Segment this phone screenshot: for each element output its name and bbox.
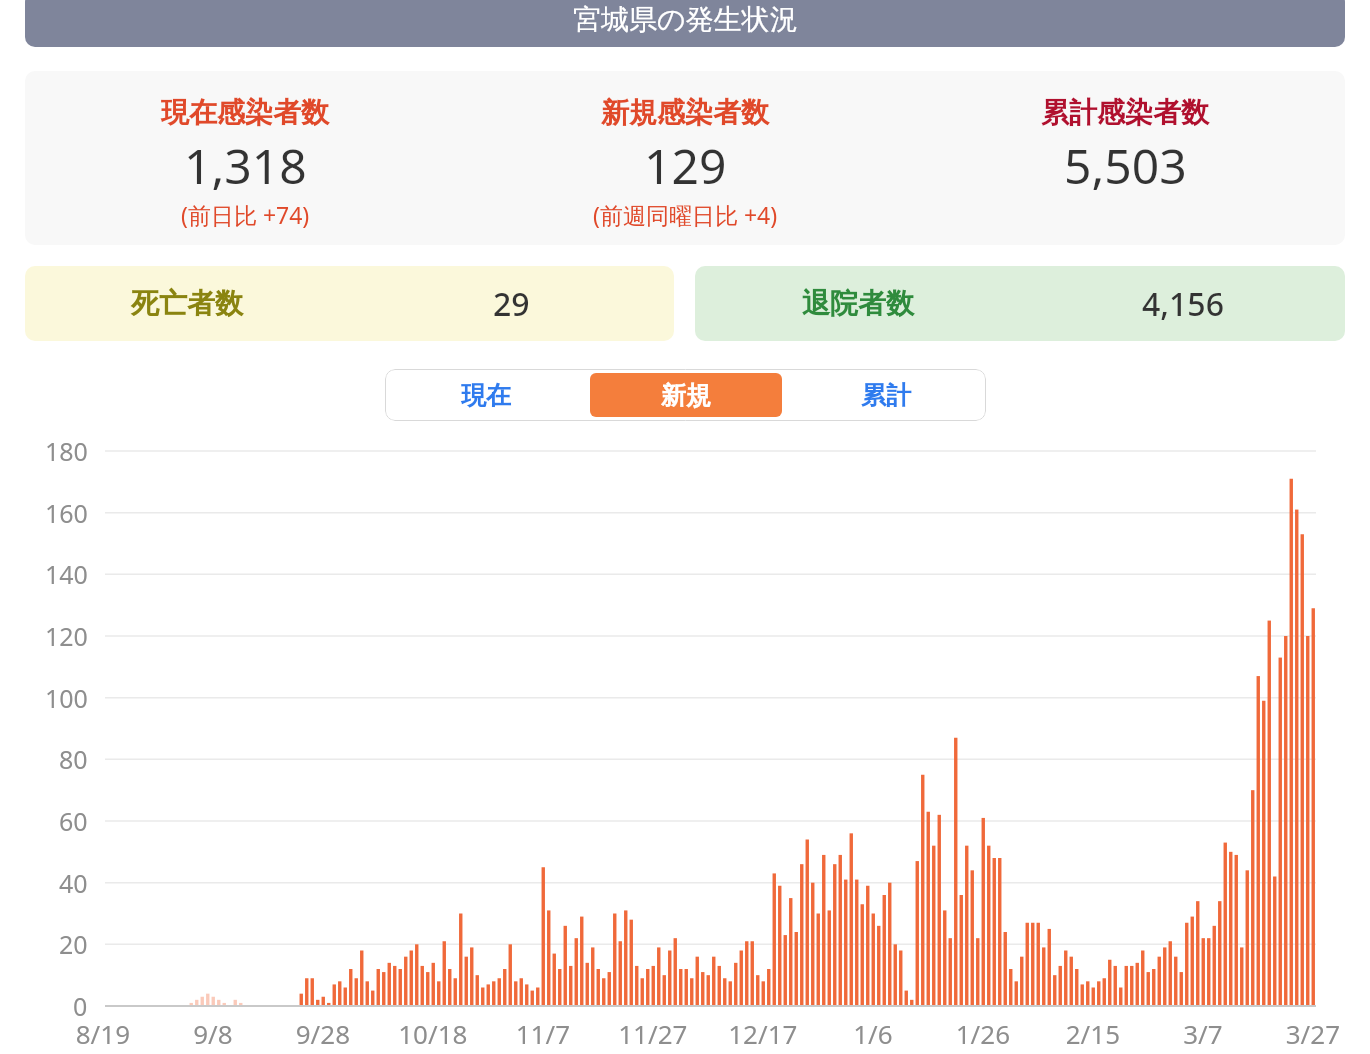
staticText: (前週同曜日比 +4) <box>593 199 778 230</box>
staticText: 29 <box>493 282 530 326</box>
staticText: 現在感染者数 <box>161 95 329 130</box>
button[interactable]: 現在 <box>389 373 582 417</box>
staticText: 死亡者数 <box>131 286 243 321</box>
button[interactable]: 退院者数 <box>695 266 1345 341</box>
staticText: 退院者数 <box>802 286 914 321</box>
staticText: 129 <box>644 133 727 198</box>
staticText: 現在 <box>461 380 511 411</box>
staticText: (前日比 +74) <box>181 199 310 230</box>
button[interactable]: 死亡者数 <box>25 266 674 341</box>
staticText: 4,156 <box>1142 282 1224 326</box>
staticText: 累計 <box>861 380 911 411</box>
staticText: 新規 <box>661 380 711 411</box>
staticText: 5,503 <box>1064 133 1187 198</box>
staticText: 累計感染者数 <box>1041 95 1209 130</box>
button[interactable]: 新規 <box>590 373 782 417</box>
button[interactable]: 累計 <box>790 373 982 417</box>
staticText: 1,318 <box>184 133 307 198</box>
staticText: 新規感染者数 <box>601 95 769 130</box>
staticText: 宮城県の発生状況 <box>573 2 798 37</box>
